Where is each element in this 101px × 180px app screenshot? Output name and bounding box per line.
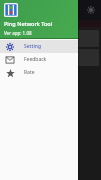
staticText: Rate	[24, 69, 35, 76]
staticText: Feedback	[24, 56, 47, 63]
button[interactable]: Rate	[0, 66, 78, 79]
staticText: Setting	[24, 43, 42, 50]
button[interactable]: Feedback	[0, 53, 78, 66]
button[interactable]	[2, 49, 99, 66]
button[interactable]: Ping Network Tool	[0, 0, 78, 39]
staticText: Ping Network Tool	[4, 20, 53, 27]
button[interactable]: Settings	[85, 4, 97, 16]
button[interactable]: Close navigation drawer	[0, 0, 101, 180]
staticText: Ver app: 1.08	[4, 30, 32, 36]
button[interactable]	[2, 30, 99, 47]
button[interactable]: Setting	[0, 40, 78, 53]
